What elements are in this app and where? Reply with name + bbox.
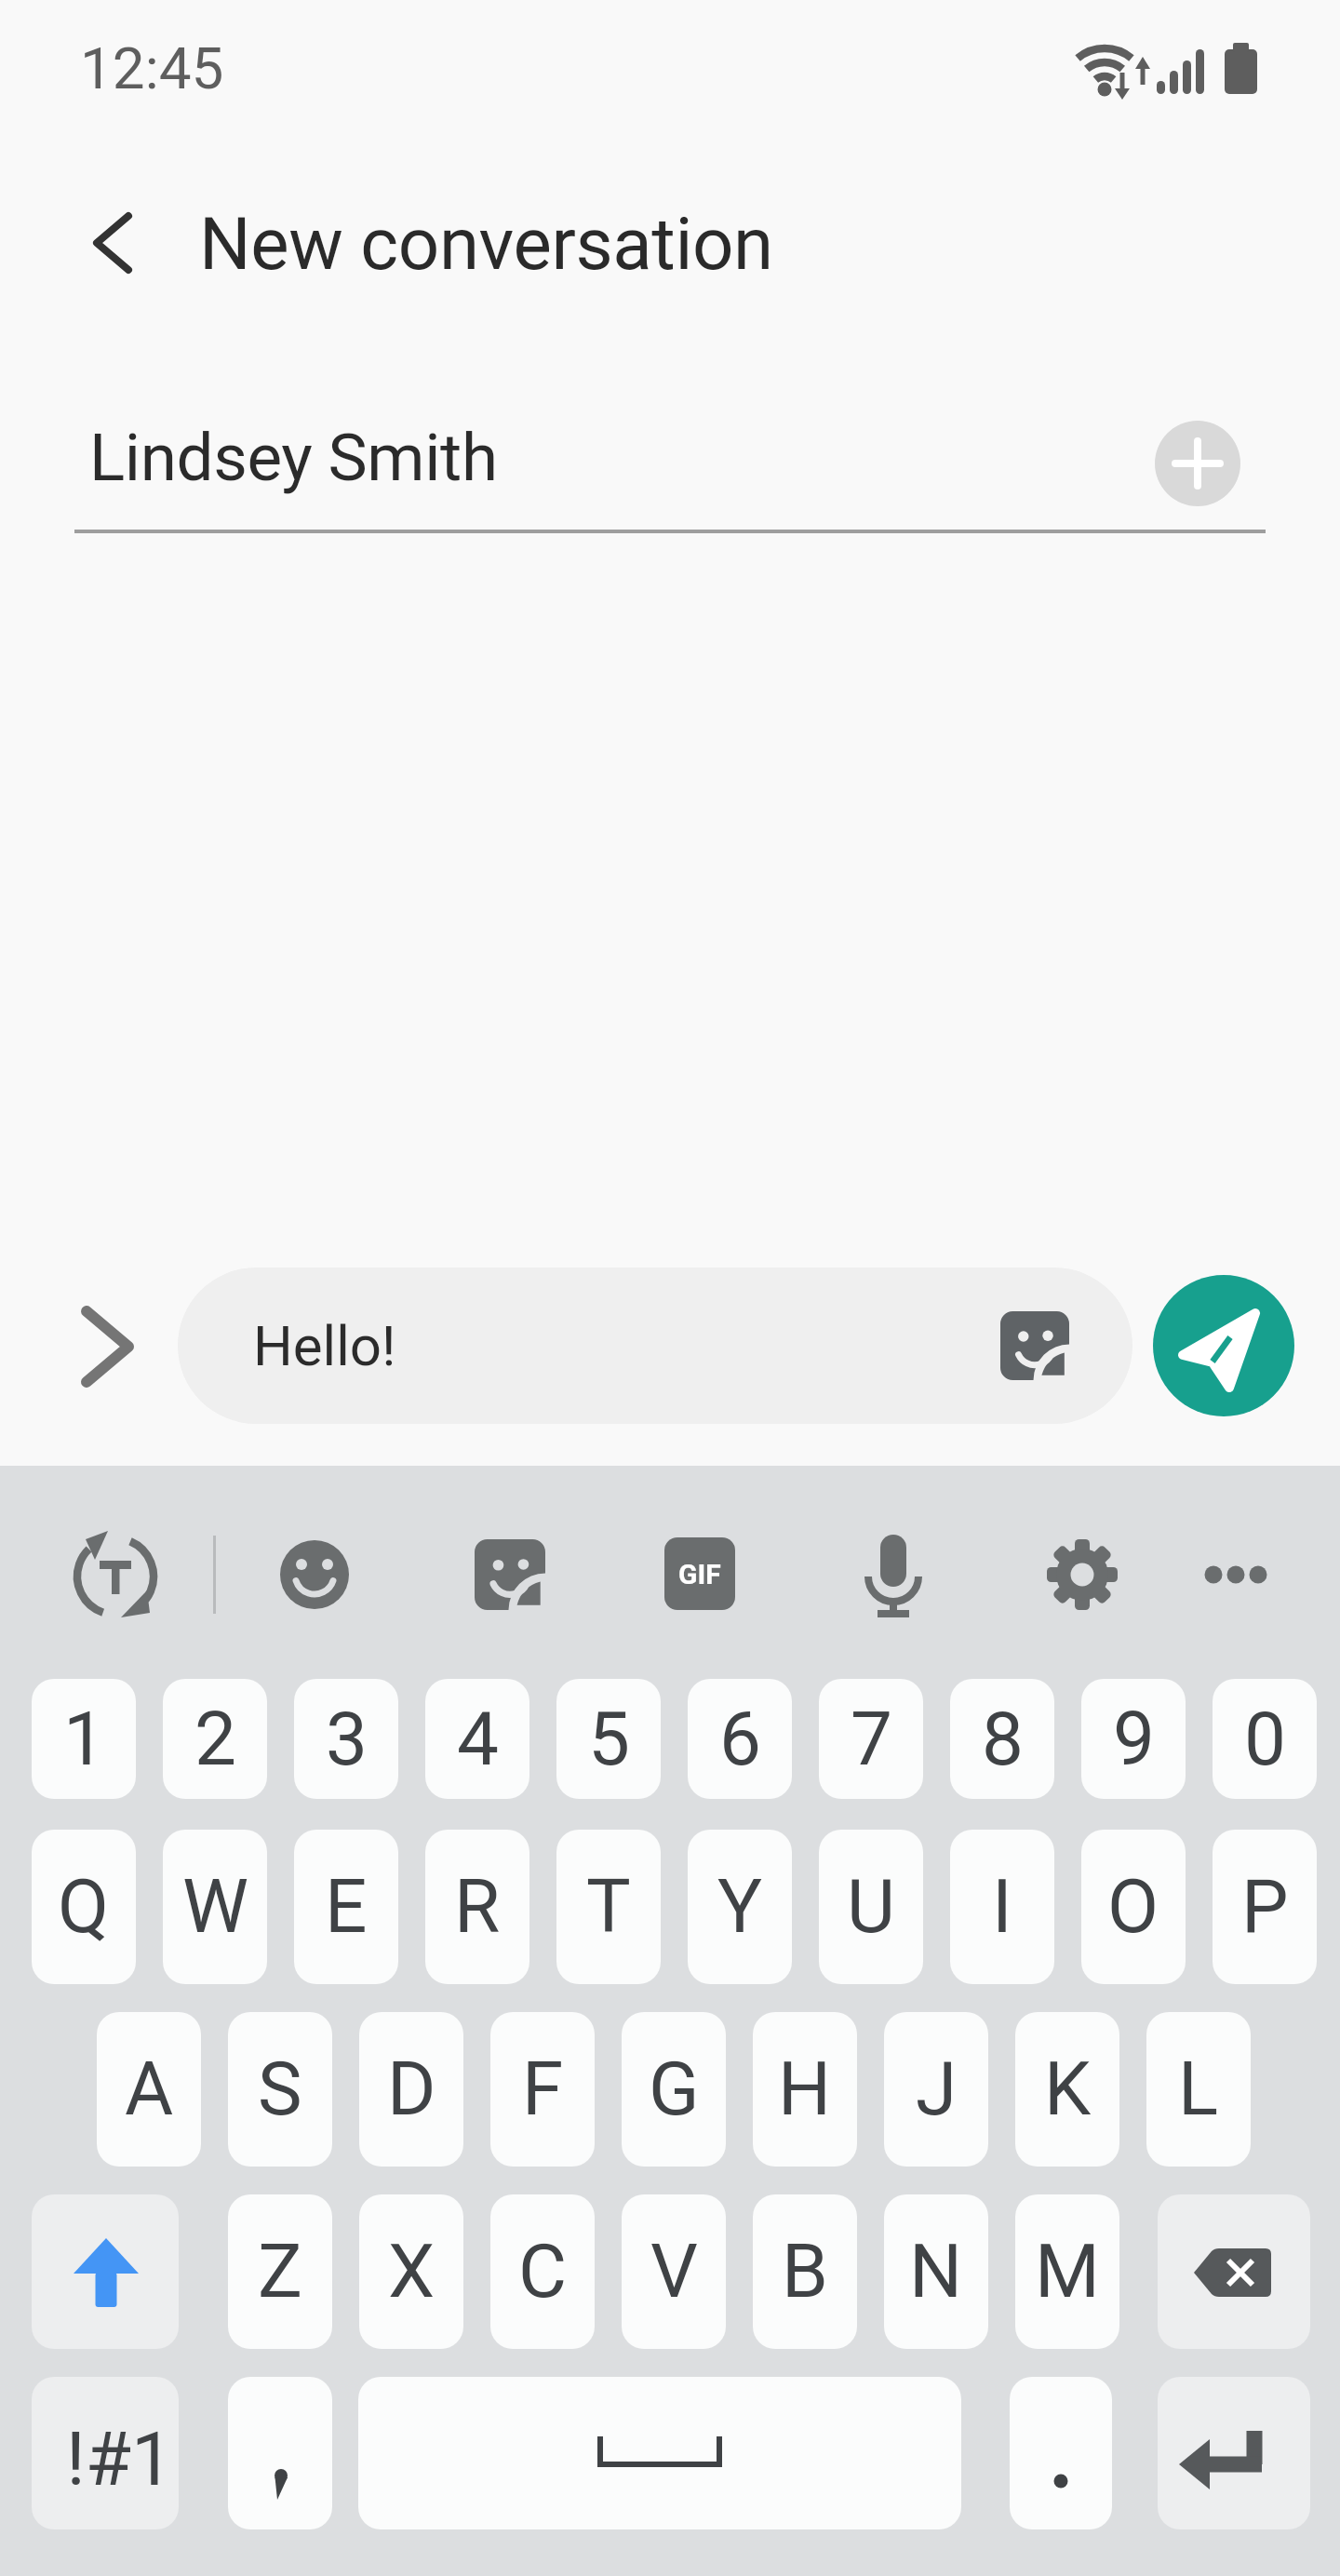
staticText: !#1 — [66, 2416, 173, 2503]
button[interactable]: L — [1146, 2012, 1251, 2167]
staticText: D — [387, 2046, 436, 2133]
button[interactable]: V — [622, 2194, 726, 2349]
button[interactable]: 2 — [163, 1679, 267, 1799]
staticText: Q — [58, 1863, 110, 1951]
staticText: 1 — [63, 1696, 105, 1783]
staticText: I — [992, 1863, 1012, 1951]
staticText: A — [125, 2046, 174, 2133]
staticText: Y — [717, 1863, 763, 1951]
staticText: W — [182, 1863, 248, 1951]
button[interactable] — [1158, 2377, 1310, 2529]
button[interactable] — [1189, 1528, 1282, 1621]
staticText: 12:45 — [80, 34, 224, 96]
staticText: K — [1044, 2046, 1092, 2133]
staticText: N — [909, 2228, 963, 2315]
button[interactable] — [463, 1528, 556, 1621]
button[interactable]: 5 — [556, 1679, 661, 1799]
staticText: 5 — [588, 1696, 630, 1783]
staticText: U — [847, 1863, 895, 1951]
staticText: 8 — [982, 1696, 1024, 1783]
button[interactable]: N — [884, 2194, 988, 2349]
button[interactable]: 9 — [1081, 1679, 1186, 1799]
staticText: 6 — [719, 1696, 761, 1783]
button[interactable] — [1155, 421, 1240, 506]
button[interactable]: Hello! — [178, 1268, 1132, 1424]
staticText: New conversation — [199, 202, 773, 284]
button[interactable]: 3 — [294, 1679, 398, 1799]
button[interactable]: P — [1213, 1830, 1317, 1984]
button[interactable]: S — [228, 2012, 332, 2167]
staticText: S — [258, 2046, 302, 2133]
staticText: GIF — [678, 1558, 721, 1590]
button[interactable] — [71, 202, 153, 284]
button[interactable] — [1036, 1528, 1129, 1621]
button[interactable]: G — [622, 2012, 726, 2167]
button[interactable] — [67, 1301, 151, 1390]
staticText: G — [649, 2046, 700, 2133]
staticText: T — [586, 1863, 631, 1951]
button[interactable]: X — [359, 2194, 463, 2349]
staticText: O — [1107, 1863, 1159, 1951]
staticText: E — [325, 1863, 368, 1951]
staticText: L — [1178, 2046, 1219, 2133]
button[interactable]: M — [1015, 2194, 1119, 2349]
button[interactable]: Q — [32, 1830, 136, 1984]
button[interactable]: 7 — [819, 1679, 923, 1799]
button[interactable] — [1010, 2377, 1112, 2529]
staticText: 7 — [851, 1696, 892, 1783]
staticText: 2 — [194, 1696, 236, 1783]
button[interactable]: GIF — [653, 1528, 746, 1621]
staticText: R — [454, 1863, 501, 1951]
staticText: J — [916, 2046, 958, 2133]
button[interactable]: I — [950, 1830, 1054, 1984]
button[interactable]: J — [884, 2012, 988, 2167]
button[interactable] — [1158, 2194, 1310, 2349]
button[interactable]: K — [1015, 2012, 1119, 2167]
button[interactable] — [60, 1519, 171, 1630]
button[interactable]: 1 — [32, 1679, 136, 1799]
staticText: C — [518, 2228, 568, 2315]
button[interactable] — [1153, 1275, 1294, 1416]
button[interactable] — [847, 1528, 940, 1621]
button[interactable]: 8 — [950, 1679, 1054, 1799]
button[interactable]: C — [490, 2194, 595, 2349]
button[interactable]: F — [490, 2012, 595, 2167]
button[interactable]: A — [97, 2012, 201, 2167]
button[interactable]: Lindsey Smith — [74, 394, 1135, 520]
staticText: X — [388, 2228, 435, 2315]
button[interactable] — [990, 1301, 1079, 1390]
staticText: Hello! — [253, 1313, 396, 1378]
button[interactable]: U — [819, 1830, 923, 1984]
button[interactable]: R — [425, 1830, 529, 1984]
staticText: P — [1241, 1863, 1289, 1951]
staticText: M — [1035, 2228, 1100, 2315]
button[interactable]: 6 — [688, 1679, 792, 1799]
staticText: 4 — [457, 1696, 499, 1783]
button[interactable]: 4 — [425, 1679, 529, 1799]
button[interactable]: D — [359, 2012, 463, 2167]
staticText: B — [782, 2228, 828, 2315]
button[interactable] — [268, 1528, 361, 1621]
button[interactable]: W — [163, 1830, 267, 1984]
staticText: 9 — [1113, 1696, 1155, 1783]
staticText: 3 — [326, 1696, 368, 1783]
button[interactable]: B — [753, 2194, 857, 2349]
button[interactable]: O — [1081, 1830, 1186, 1984]
staticText: H — [778, 2046, 832, 2133]
staticText: 0 — [1244, 1696, 1286, 1783]
button[interactable]: 0 — [1213, 1679, 1317, 1799]
staticText: Z — [258, 2228, 302, 2315]
button[interactable] — [228, 2377, 332, 2529]
button[interactable]: !#1 — [32, 2377, 179, 2529]
staticText: Lindsey Smith — [89, 419, 498, 496]
button[interactable]: T — [556, 1830, 661, 1984]
button[interactable]: Z — [228, 2194, 332, 2349]
button[interactable]: E — [294, 1830, 398, 1984]
button[interactable]: Y — [688, 1830, 792, 1984]
staticText: V — [650, 2228, 698, 2315]
button[interactable] — [358, 2377, 961, 2529]
staticText: F — [522, 2046, 564, 2133]
button[interactable] — [32, 2194, 179, 2349]
button[interactable]: H — [753, 2012, 857, 2167]
